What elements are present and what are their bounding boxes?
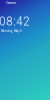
staticText: 08:42 [0, 13, 30, 29]
staticText: Carrier [6, 0, 16, 5]
staticText: Monday, May 5 [1, 29, 22, 33]
